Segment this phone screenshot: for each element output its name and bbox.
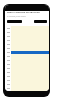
button[interactable] [5, 5, 49, 11]
staticText: DRESS CARRIAGE INSTRUCTOR [7, 11, 40, 14]
button[interactable] [34, 20, 47, 23]
staticText: to continue, enter details [7, 15, 26, 17]
button[interactable] [7, 20, 22, 23]
